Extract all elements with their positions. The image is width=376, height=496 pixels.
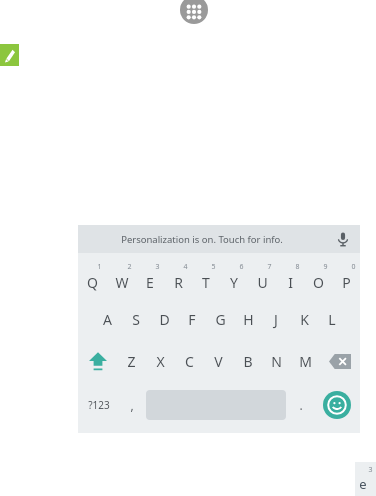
button[interactable]: Personalization is on. Touch for info. bbox=[78, 225, 360, 253]
staticText: 3 bbox=[368, 465, 373, 475]
staticText: Personalization is on. Touch for info. bbox=[121, 233, 283, 246]
button[interactable]: L bbox=[318, 298, 346, 340]
staticText: E bbox=[146, 273, 154, 292]
button[interactable]: Voice input bbox=[326, 225, 360, 253]
staticText: K bbox=[300, 310, 309, 329]
staticText: F bbox=[188, 310, 196, 329]
button[interactable]: Shift bbox=[78, 340, 117, 382]
staticText: 5 bbox=[211, 262, 216, 272]
button[interactable]: H bbox=[234, 298, 262, 340]
button[interactable]: 1 bbox=[78, 256, 107, 298]
staticText: V bbox=[214, 352, 223, 371]
staticText: 0 bbox=[351, 262, 356, 272]
button[interactable]: B bbox=[233, 340, 262, 382]
button[interactable]: N bbox=[262, 340, 291, 382]
staticText: 8 bbox=[295, 262, 300, 272]
staticText: C bbox=[185, 352, 194, 371]
staticText: P bbox=[342, 273, 351, 292]
button[interactable]: F bbox=[178, 298, 206, 340]
button[interactable]: , bbox=[119, 382, 144, 428]
button[interactable]: 7 bbox=[248, 256, 276, 298]
button[interactable]: D bbox=[150, 298, 178, 340]
staticText: X bbox=[156, 352, 165, 371]
staticText: A bbox=[103, 310, 112, 329]
staticText: ?123 bbox=[88, 398, 110, 412]
button[interactable]: M bbox=[291, 340, 320, 382]
button[interactable]: Z bbox=[117, 340, 146, 382]
staticText: I bbox=[288, 273, 293, 292]
staticText: S bbox=[132, 310, 140, 329]
staticText: N bbox=[271, 352, 282, 371]
staticText: R bbox=[174, 273, 183, 292]
staticText: O bbox=[313, 273, 324, 292]
staticText: 1 bbox=[97, 262, 102, 272]
button[interactable]: ?123 bbox=[78, 382, 119, 428]
staticText: G bbox=[215, 310, 226, 329]
button[interactable]: Emoji bbox=[323, 391, 351, 419]
button[interactable]: 0 bbox=[332, 256, 360, 298]
button[interactable]: 6 bbox=[220, 256, 248, 298]
button[interactable]: K bbox=[290, 298, 318, 340]
staticText: J bbox=[274, 310, 278, 329]
staticText: H bbox=[243, 310, 254, 329]
staticText: W bbox=[115, 273, 129, 292]
button[interactable]: 5 bbox=[192, 256, 220, 298]
button[interactable]: . bbox=[288, 382, 313, 428]
staticText: T bbox=[202, 273, 210, 292]
button[interactable]: 4 bbox=[164, 256, 192, 298]
button[interactable]: J bbox=[262, 298, 290, 340]
staticText: e bbox=[359, 475, 367, 493]
staticText: L bbox=[328, 310, 336, 329]
button[interactable]: 2 bbox=[107, 256, 136, 298]
button[interactable]: 3 bbox=[355, 462, 376, 496]
button[interactable]: V bbox=[204, 340, 233, 382]
button[interactable]: Apps bbox=[180, 0, 208, 24]
button[interactable]: 8 bbox=[276, 256, 304, 298]
staticText: . bbox=[299, 397, 303, 413]
staticText: Y bbox=[230, 273, 238, 292]
button[interactable]: Backspace bbox=[320, 340, 360, 382]
staticText: Q bbox=[87, 273, 98, 292]
button[interactable]: X bbox=[146, 340, 175, 382]
staticText: 6 bbox=[239, 262, 244, 272]
staticText: M bbox=[299, 352, 312, 371]
button[interactable]: Edit bbox=[0, 44, 19, 66]
staticText: Z bbox=[127, 352, 136, 371]
button[interactable]: 9 bbox=[304, 256, 332, 298]
button[interactable]: 3 bbox=[136, 256, 164, 298]
button[interactable]: S bbox=[122, 298, 150, 340]
staticText: , bbox=[130, 397, 134, 413]
staticText: 9 bbox=[323, 262, 328, 272]
staticText: 4 bbox=[183, 262, 188, 272]
staticText: U bbox=[257, 273, 268, 292]
button[interactable]: C bbox=[175, 340, 204, 382]
staticText: 7 bbox=[267, 262, 272, 272]
staticText: D bbox=[159, 310, 170, 329]
staticText: 2 bbox=[127, 262, 132, 272]
button[interactable]: G bbox=[206, 298, 234, 340]
staticText: 3 bbox=[155, 262, 160, 272]
button[interactable]: A bbox=[93, 298, 122, 340]
staticText: B bbox=[243, 352, 253, 371]
